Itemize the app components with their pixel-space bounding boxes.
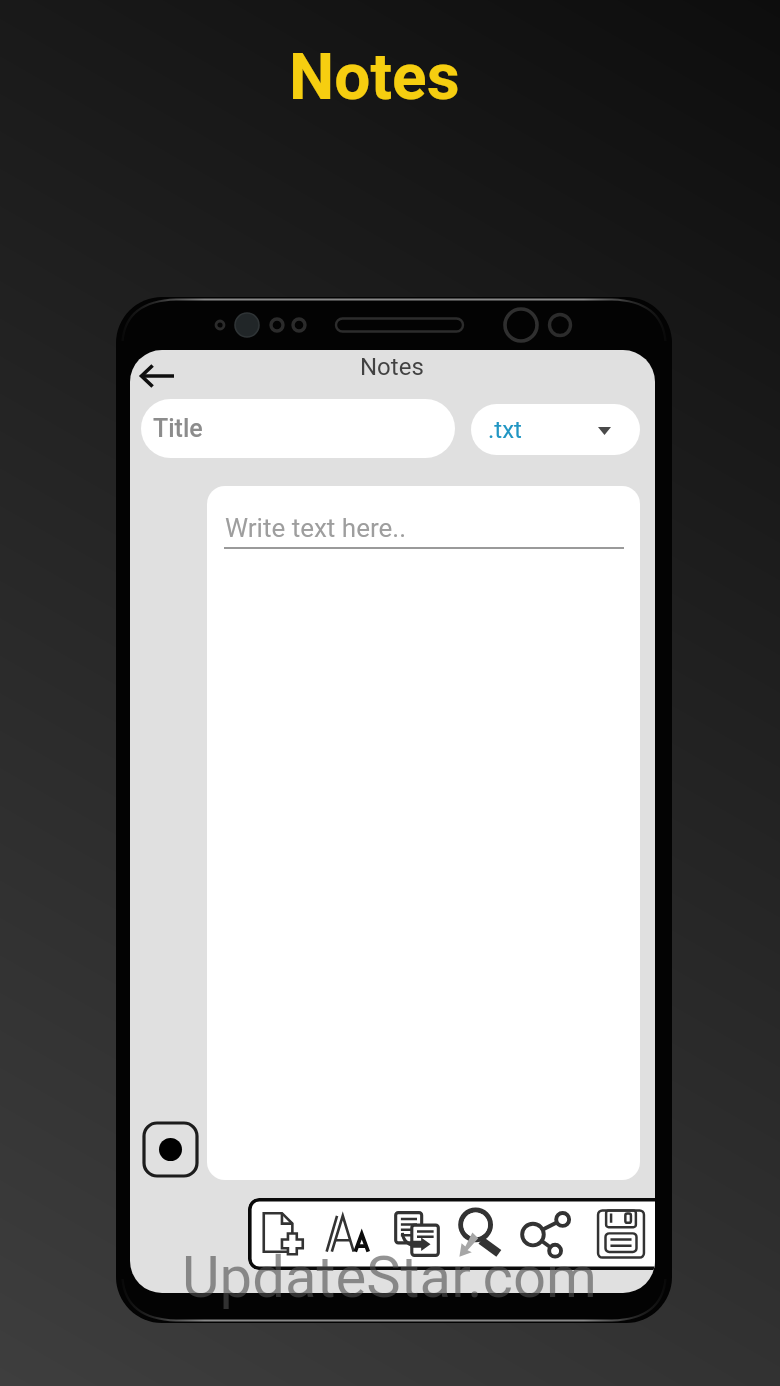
button[interactable]: Font size: [316, 1198, 382, 1270]
button[interactable]: Copy: [384, 1198, 450, 1270]
button[interactable]: New note: [250, 1198, 316, 1270]
staticText: UpdateStar.com: [182, 1243, 597, 1311]
staticText: Write text here..: [225, 513, 406, 543]
button[interactable]: Save: [588, 1198, 654, 1270]
button[interactable]: Title: [141, 399, 455, 458]
button[interactable]: Search: [448, 1198, 514, 1270]
staticText: Notes: [360, 353, 424, 381]
button[interactable]: .txt: [471, 404, 640, 455]
staticText: Notes: [289, 40, 460, 115]
button[interactable]: Write text here..: [207, 486, 640, 1180]
button[interactable]: Back: [134, 353, 179, 398]
button[interactable]: Record: [142, 1121, 199, 1178]
staticText: .txt: [488, 416, 522, 444]
button[interactable]: Share: [514, 1198, 580, 1270]
staticText: Title: [153, 414, 203, 443]
